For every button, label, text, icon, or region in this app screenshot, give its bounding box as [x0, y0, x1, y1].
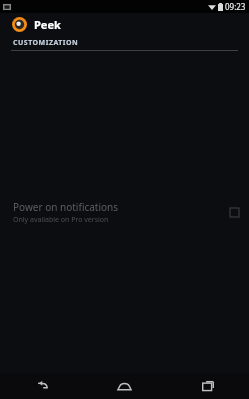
button[interactable]: Home — [83, 373, 166, 399]
staticText: 09:23 — [225, 1, 246, 12]
staticText: Peek — [34, 17, 61, 32]
button[interactable]: Disabled — [230, 208, 239, 217]
staticText: CUSTOMIZATION — [13, 38, 79, 48]
button[interactable]: Peek — [0, 13, 249, 36]
staticText: Only available on Pro version — [13, 215, 109, 225]
button[interactable]: Power on notifications — [0, 51, 249, 373]
staticText: Power on notifications — [13, 200, 119, 214]
button[interactable]: Back — [0, 373, 83, 399]
button[interactable]: Recent apps — [166, 373, 249, 399]
